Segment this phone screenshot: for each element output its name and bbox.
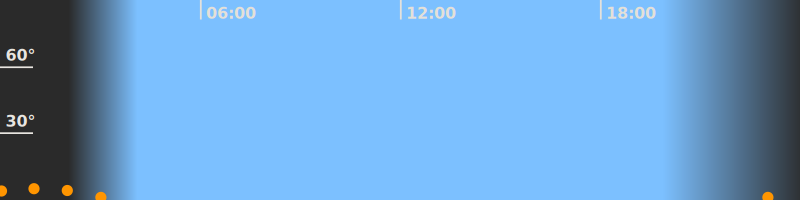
staticText: 18:00 (606, 4, 656, 22)
staticText: 06:00 (206, 4, 256, 22)
staticText: 60° (6, 46, 36, 64)
staticText: 30° (6, 112, 36, 130)
staticText: 12:00 (406, 4, 456, 22)
